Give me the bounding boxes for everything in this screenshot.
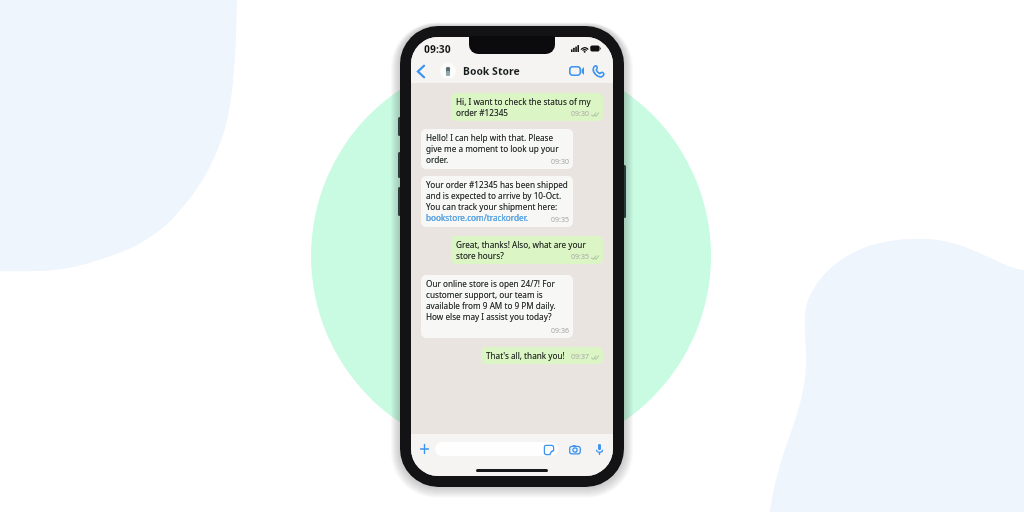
staticText: Our online store is open 24/7! For custo… bbox=[426, 278, 556, 322]
button[interactable]: Attach bbox=[415, 440, 433, 458]
staticText: 09:30 bbox=[424, 42, 451, 56]
other: Stickers bbox=[543, 444, 554, 455]
staticText: 09:30 bbox=[551, 157, 569, 167]
staticText: Your order #12345 has been shipped and i… bbox=[426, 179, 568, 223]
staticText: Your order #12345 has been shipped and i… bbox=[426, 179, 568, 223]
staticText: Book Store bbox=[463, 64, 520, 78]
staticText: Great, thanks! Also, what are your store… bbox=[456, 239, 586, 261]
staticText: Our online store is open 24/7! For custo… bbox=[426, 278, 556, 322]
staticText: 09:30 bbox=[571, 109, 589, 119]
button[interactable]: Your order #12345 has been shipped and i… bbox=[421, 176, 573, 227]
staticText: 09:35 bbox=[571, 252, 589, 262]
staticText: That's all, thank you! bbox=[486, 350, 565, 361]
button[interactable]: Voice message bbox=[590, 440, 608, 458]
button[interactable]: Back bbox=[412, 59, 429, 83]
button[interactable]: Stickers bbox=[435, 442, 558, 456]
button[interactable]: Voice call bbox=[587, 59, 609, 83]
button[interactable]: Great, thanks! Also, what are your store… bbox=[451, 236, 603, 264]
staticText: Hello! I can help with that. Please give… bbox=[426, 132, 559, 165]
staticText: 09:36 bbox=[551, 326, 569, 336]
button[interactable]: That's all, thank you! bbox=[481, 347, 603, 364]
button[interactable]: Video call bbox=[565, 59, 587, 83]
staticText: 09:37 bbox=[571, 352, 589, 362]
button[interactable]: Hi, I want to check the status of my ord… bbox=[451, 93, 603, 121]
button[interactable]: Our online store is open 24/7! For custo… bbox=[421, 275, 573, 338]
staticText: Hi, I want to check the status of my ord… bbox=[456, 96, 591, 118]
button[interactable]: Camera bbox=[566, 440, 584, 458]
staticText: Great, thanks! Also, what are your store… bbox=[456, 239, 586, 261]
staticText: Hello! I can help with that. Please give… bbox=[426, 132, 559, 165]
staticText: That's all, thank you! bbox=[486, 350, 565, 361]
staticText: 09:35 bbox=[551, 215, 569, 225]
button[interactable]: Hello! I can help with that. Please give… bbox=[421, 129, 573, 169]
staticText: Hi, I want to check the status of my ord… bbox=[456, 96, 591, 118]
